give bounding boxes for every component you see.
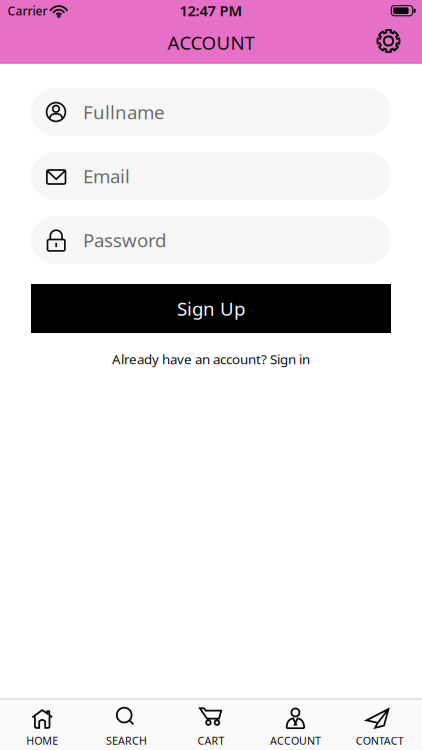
button[interactable]: [171, 699, 251, 749]
staticText: Fullname: [83, 100, 165, 124]
button[interactable]: [340, 699, 420, 749]
staticText: ACCOUNT: [167, 30, 254, 55]
button[interactable]: [255, 699, 335, 749]
staticText: Carrier: [7, 3, 47, 19]
button[interactable]: [2, 699, 82, 749]
button[interactable]: [87, 699, 167, 749]
button[interactable]: [366, 19, 410, 63]
staticText: CONTACT: [356, 733, 404, 748]
button[interactable]: Email: [31, 152, 391, 200]
staticText: Already have an account? Sign in: [112, 350, 310, 368]
staticText: Sign Up: [177, 296, 245, 321]
staticText: SEARCH: [106, 733, 147, 748]
button[interactable]: Sign Up: [31, 284, 391, 333]
staticText: CART: [197, 733, 224, 748]
staticText: ACCOUNT: [270, 733, 321, 748]
button[interactable]: Already have an account? Sign in: [112, 350, 310, 368]
button[interactable]: Password: [31, 216, 391, 264]
button[interactable]: Fullname: [31, 88, 391, 136]
staticText: Email: [83, 164, 130, 188]
staticText: 12:47 PM: [179, 1, 242, 20]
staticText: Password: [83, 228, 166, 252]
staticText: HOME: [26, 733, 58, 748]
